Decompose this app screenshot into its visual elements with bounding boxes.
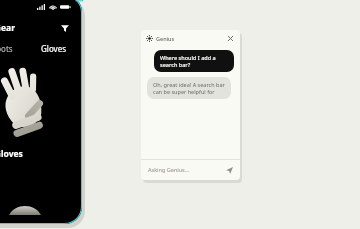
button[interactable]: Gloves <box>36 41 71 56</box>
staticText: Genius <box>156 35 175 42</box>
staticText: Oh, great idea! A search bar can be supe… <box>153 81 225 95</box>
staticText: Space Gear <box>0 22 15 34</box>
staticText: Boots <box>0 43 13 54</box>
button[interactable]: Boots <box>0 41 18 56</box>
button[interactable]: Filter <box>59 22 71 34</box>
staticText: Asking Genius... <box>148 166 190 173</box>
button[interactable]: Asking Genius... <box>141 159 240 180</box>
staticText: Gloves <box>41 43 66 54</box>
staticText: Space Gloves <box>0 148 23 160</box>
button[interactable]: Where should I add a search bar? <box>154 50 234 72</box>
button[interactable]: Send <box>224 165 234 175</box>
button[interactable]: Close <box>225 33 236 44</box>
button[interactable]: Oh, great idea! A search bar can be supe… <box>147 77 231 99</box>
staticText: Where should I add a search bar? <box>160 54 228 68</box>
